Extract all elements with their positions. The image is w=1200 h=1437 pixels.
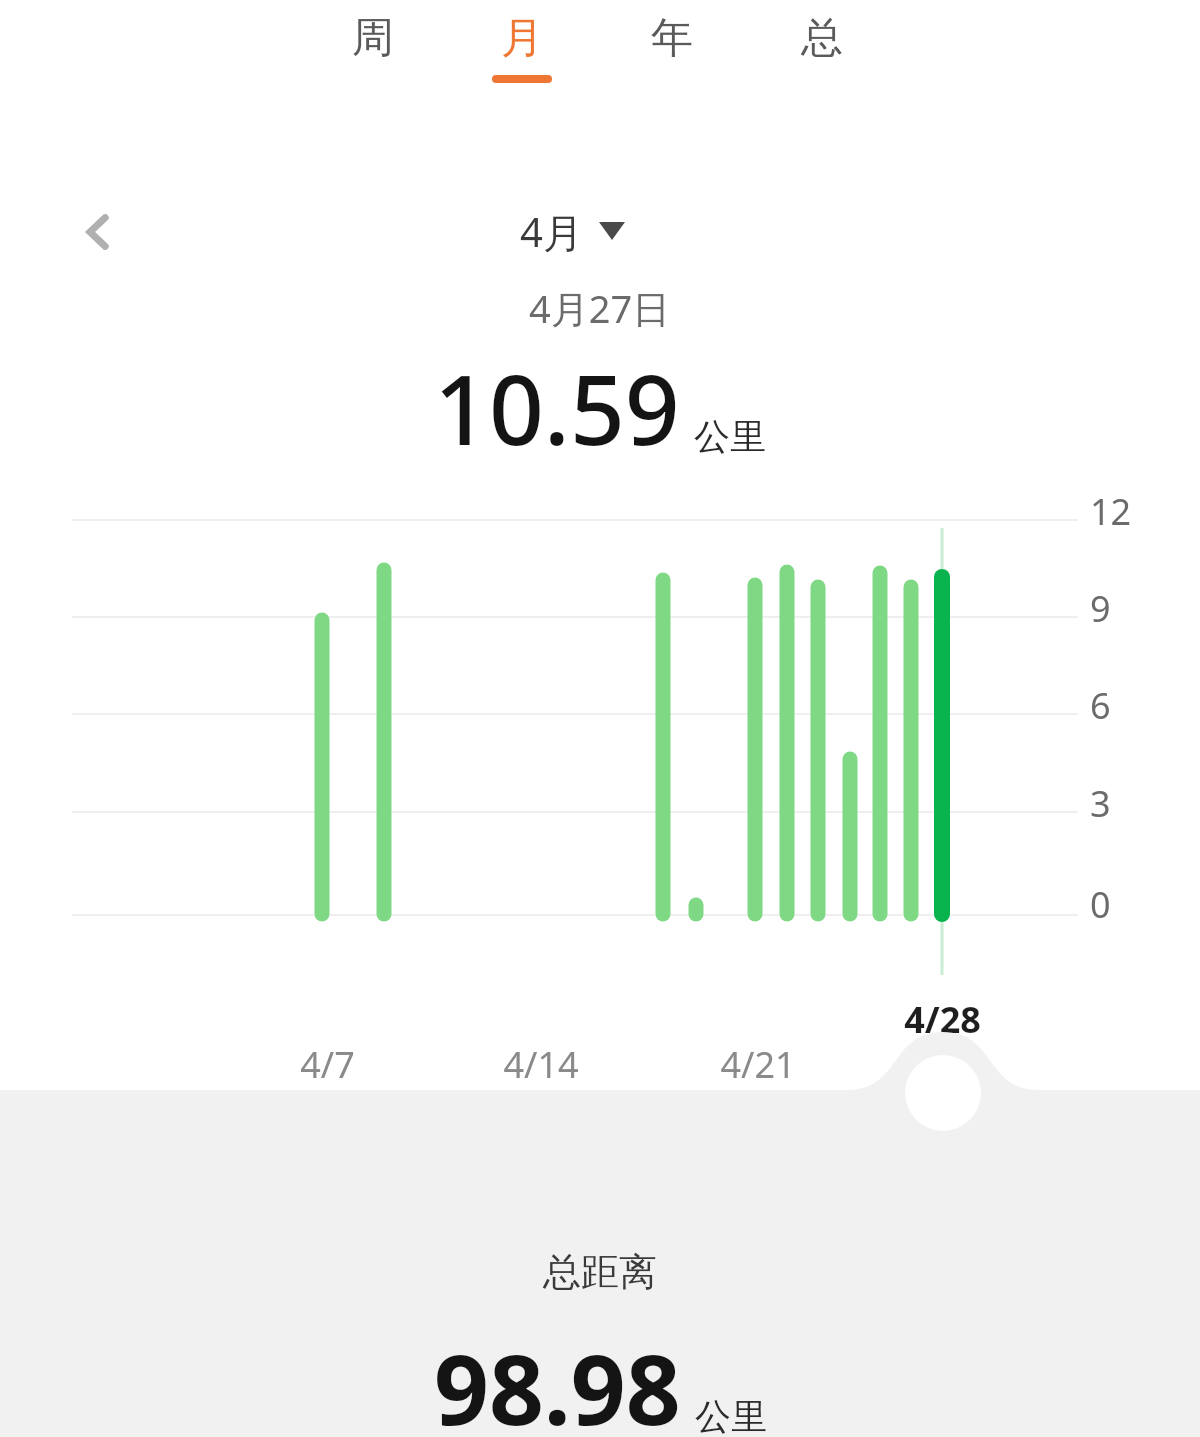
staticText: 4月: [520, 204, 583, 259]
button[interactable]: 总: [767, 12, 877, 107]
staticText: 98.98: [434, 1322, 681, 1437]
staticText: 年: [651, 12, 693, 65]
staticText: 公里: [695, 1394, 767, 1437]
staticText: 月: [501, 12, 543, 65]
staticText: 0: [1090, 880, 1111, 929]
button[interactable]: Back: [58, 192, 138, 272]
staticText: 3: [1090, 779, 1111, 828]
staticText: 4/7: [300, 1040, 355, 1089]
staticText: 10.59: [434, 342, 680, 473]
staticText: 公里: [694, 414, 766, 459]
staticText: 总距离: [543, 1248, 657, 1296]
button[interactable]: 4月: [520, 200, 625, 262]
staticText: 12: [1090, 487, 1132, 536]
staticText: 4/21: [720, 1040, 796, 1089]
button[interactable]: 周: [318, 12, 428, 107]
button[interactable]: 月: [467, 12, 577, 107]
staticText: 4/14: [503, 1040, 579, 1089]
button[interactable]: 年: [617, 12, 727, 107]
staticText: 4/28: [904, 995, 981, 1044]
staticText: 4月27日: [529, 282, 671, 334]
staticText: 周: [352, 12, 394, 65]
staticText: 6: [1090, 681, 1111, 730]
staticText: 9: [1090, 584, 1111, 633]
staticText: 总: [801, 12, 843, 65]
